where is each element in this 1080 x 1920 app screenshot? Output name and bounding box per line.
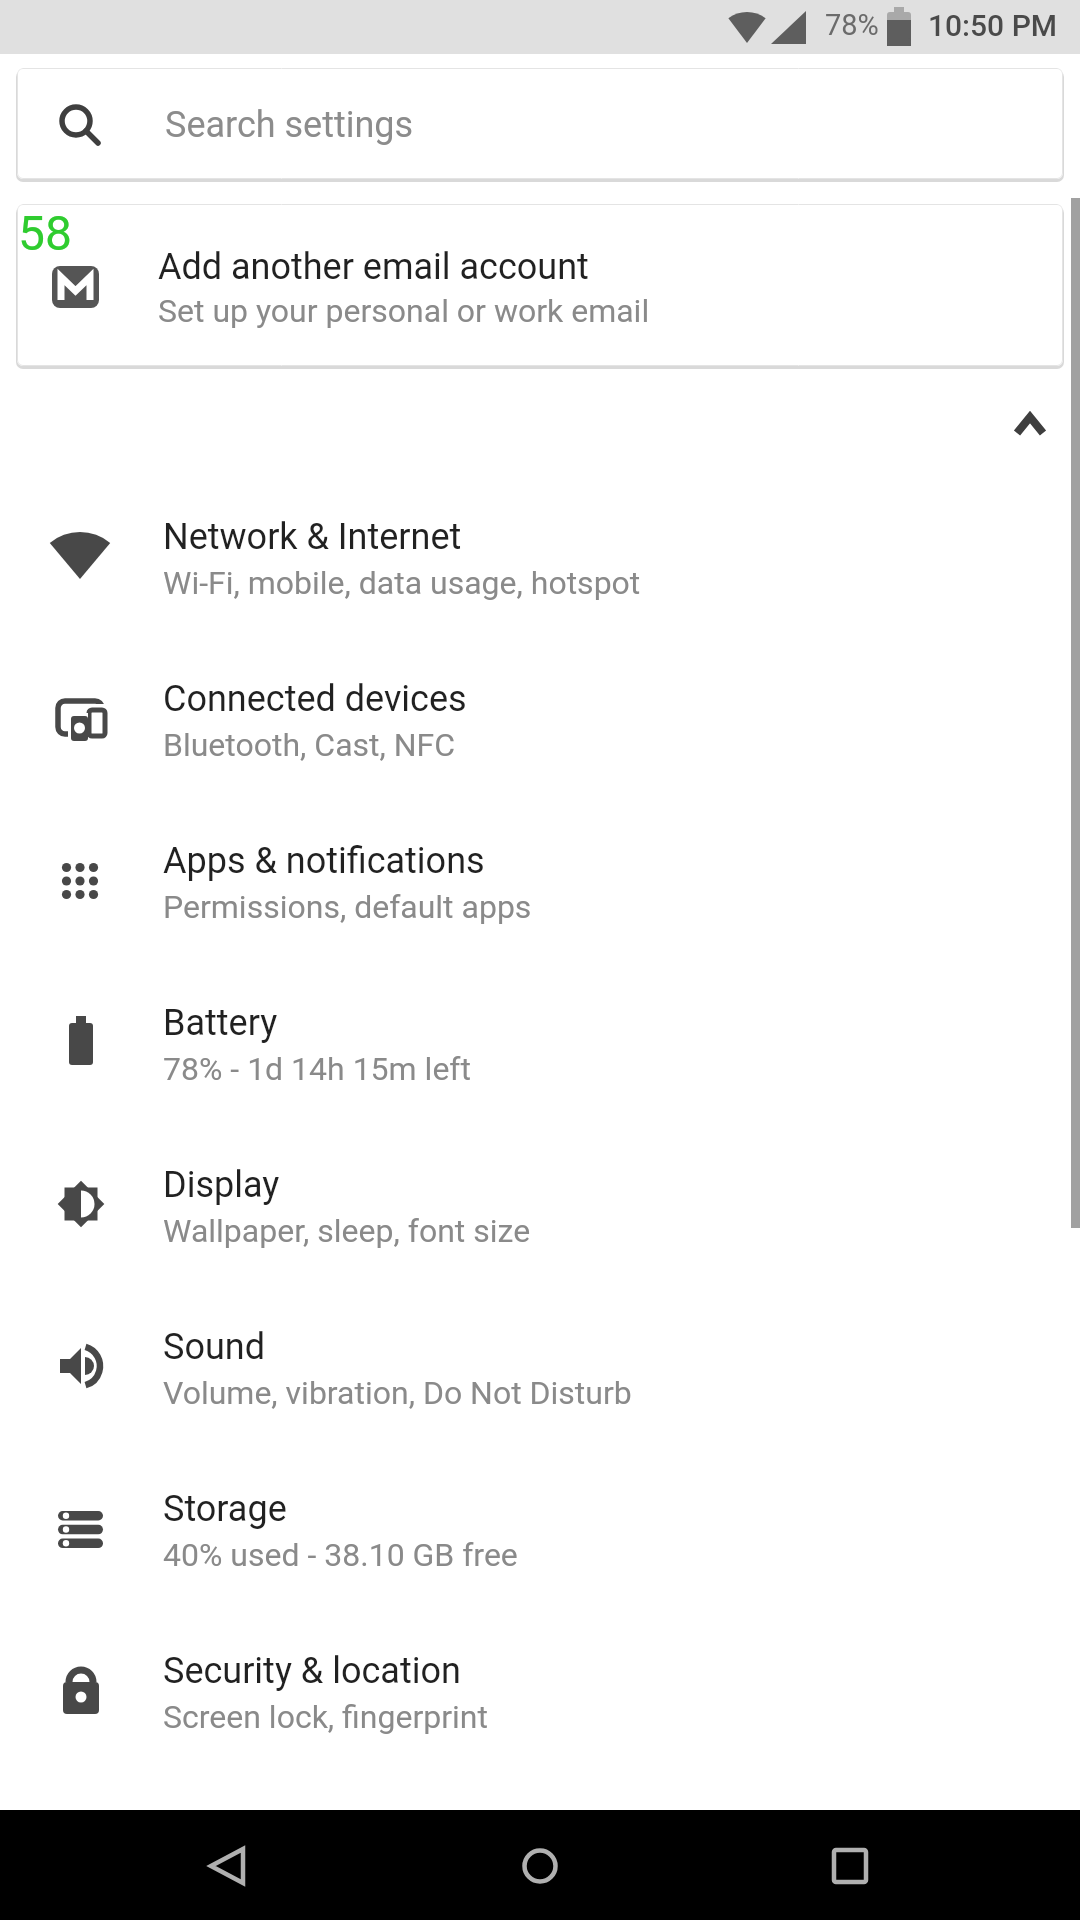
button[interactable] [500, 1826, 580, 1906]
staticText: Battery [163, 1002, 278, 1044]
staticText: Add another email account [158, 246, 589, 288]
button[interactable]: Display [0, 1104, 1080, 1266]
staticText: Connected devices [163, 678, 467, 720]
staticText: 10:50 PM [928, 8, 1058, 43]
button[interactable]: Network & Internet [0, 456, 1080, 618]
staticText: 58 [18, 205, 72, 259]
staticText: Wallpaper, sleep, font size [163, 1212, 531, 1250]
staticText: 78% - 1d 14h 15m left [163, 1050, 471, 1088]
button[interactable] [810, 1826, 890, 1906]
staticText: Bluetooth, Cast, NFC [163, 726, 456, 764]
staticText: Search settings [165, 104, 414, 146]
staticText: 78% [825, 8, 879, 42]
button[interactable]: Connected devices [0, 618, 1080, 780]
staticText: Network & Internet [163, 516, 462, 558]
button[interactable]: Security & location [0, 1590, 1080, 1752]
staticText: Set up your personal or work email [158, 292, 650, 330]
staticText: 40% used - 38.10 GB free [163, 1536, 518, 1574]
staticText: Screen lock, fingerprint [163, 1698, 488, 1736]
button[interactable] [187, 1826, 267, 1906]
staticText: Security & location [163, 1650, 461, 1692]
button[interactable]: Sound [0, 1266, 1080, 1428]
staticText: Sound [163, 1326, 265, 1368]
staticText: Storage [163, 1488, 287, 1530]
button[interactable]: Search settings [17, 68, 1063, 179]
button[interactable]: 58 [17, 204, 1063, 366]
staticText: Volume, vibration, Do Not Disturb [163, 1374, 632, 1412]
button[interactable] [1005, 400, 1055, 444]
staticText: Permissions, default apps [163, 888, 532, 926]
button[interactable]: Battery [0, 942, 1080, 1104]
button[interactable]: Storage [0, 1428, 1080, 1590]
staticText: Apps & notifications [163, 840, 485, 882]
button[interactable]: Apps & notifications [0, 780, 1080, 942]
staticText: Display [163, 1164, 280, 1206]
staticText: Wi-Fi, mobile, data usage, hotspot [163, 564, 641, 602]
